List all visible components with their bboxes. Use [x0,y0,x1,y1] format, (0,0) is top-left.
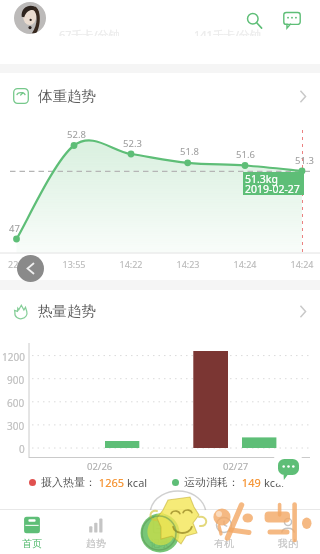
staticText: kcal [264,475,285,490]
button[interactable]: 体重趋势 [0,73,320,119]
staticText: 67千卡/分钟 [59,27,120,36]
staticText: 900 [7,373,25,387]
staticText: 22:5 [8,258,26,270]
staticText: 14:24 [233,258,257,270]
staticText: 51.8 [180,145,199,158]
staticText: 热量趋势 [38,302,96,320]
button[interactable]: 有机 [192,510,256,554]
staticText: 运动消耗： [184,475,239,489]
staticText: 0 [19,442,25,456]
button[interactable]: Search [242,8,266,32]
staticText: 记录 [150,537,170,550]
staticText: 02/27 [223,460,249,473]
staticText: 51.3kg [245,172,278,186]
staticText: 51.3 [295,154,314,167]
staticText: 有机 [214,537,234,550]
staticText: 02/26 [87,460,113,473]
staticText: 摄入热量： [41,475,96,489]
button[interactable]: 首页 [0,510,64,554]
staticText: kcal [127,475,148,490]
staticText: 2019-02-27 [245,182,300,196]
staticText: 600 [7,396,25,410]
staticText: 300 [7,419,25,433]
button[interactable]: Profile [14,2,46,34]
button[interactable]: Messages [280,8,304,32]
button[interactable]: 热量趋势 [0,290,320,332]
staticText: 体重趋势 [38,87,96,105]
staticText: 51.6 [236,148,255,161]
staticText: 1265 [96,475,127,490]
button[interactable]: 记录 [128,510,192,554]
button[interactable]: Back [17,255,44,282]
staticText: 1200 [2,350,25,364]
button[interactable]: Chat [270,451,306,487]
staticText: 14:24 [290,258,314,270]
staticText: 141千卡/分钟 [194,27,261,36]
staticText: 52.3 [123,137,142,150]
staticText: 52.8 [67,128,86,141]
button[interactable]: 我的 [256,510,320,554]
staticText: 47 [9,222,20,235]
staticText: 趋势 [86,537,106,550]
staticText: 149 [239,475,264,490]
staticText: 14:23 [176,258,200,270]
staticText: 首页 [22,537,42,550]
staticText: 我的 [278,537,298,550]
staticText: 14:22 [119,258,143,270]
button[interactable]: 趋势 [64,510,128,554]
staticText: 13:55 [62,258,86,270]
